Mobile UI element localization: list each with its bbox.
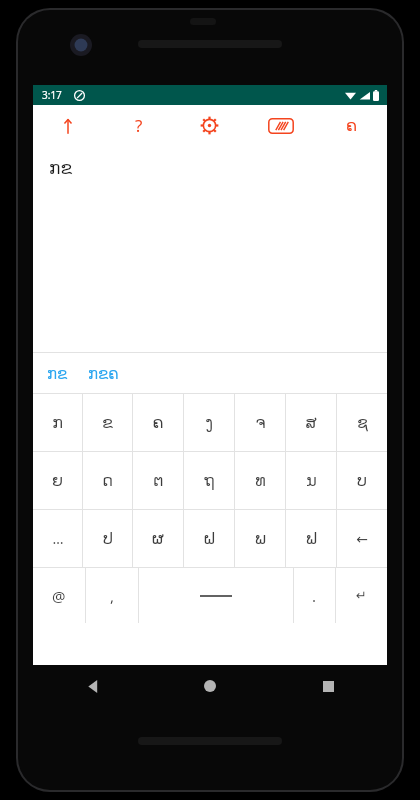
- button[interactable]: …: [33, 510, 82, 567]
- button[interactable]: ຊ: [337, 394, 387, 451]
- staticText: 3:17: [42, 88, 62, 102]
- staticText: ຝ: [203, 529, 216, 548]
- button[interactable]: Keyboard layout: [245, 105, 316, 146]
- staticText: ຊ: [357, 413, 368, 432]
- button[interactable]: ຂ: [83, 394, 132, 451]
- button[interactable]: ຕ: [133, 452, 183, 509]
- button[interactable]: Home: [151, 665, 269, 707]
- staticText: ກຂ: [49, 158, 73, 178]
- staticText: ↵: [356, 588, 367, 603]
- staticText: ກຂ: [47, 365, 68, 382]
- staticText: ປ: [103, 529, 113, 548]
- button[interactable]: ຝ: [184, 510, 234, 567]
- button[interactable]: ດ: [83, 452, 132, 509]
- staticText: ←: [356, 531, 368, 547]
- button[interactable]: Recent apps: [269, 665, 387, 707]
- staticText: .: [312, 586, 317, 606]
- staticText: ຖ: [204, 471, 215, 490]
- button[interactable]: Enter: [336, 568, 387, 623]
- button[interactable]: ຈ: [235, 394, 285, 451]
- button[interactable]: ←: [337, 510, 387, 567]
- button[interactable]: ນ: [286, 452, 336, 509]
- button[interactable]: Back: [33, 665, 151, 707]
- staticText: ,: [110, 586, 115, 606]
- button[interactable]: ຖ: [184, 452, 234, 509]
- button[interactable]: ຟ: [286, 510, 336, 567]
- button[interactable]: ຍ: [33, 452, 82, 509]
- button[interactable]: ພ: [235, 510, 285, 567]
- staticText: ກຂຄ: [88, 365, 119, 382]
- staticText: ກ: [52, 413, 63, 432]
- staticText: ຄ: [346, 116, 358, 135]
- staticText: ດ: [102, 471, 113, 490]
- button[interactable]: ?: [103, 105, 174, 146]
- button[interactable]: ຄ: [133, 394, 183, 451]
- staticText: ຟ: [306, 529, 317, 548]
- button[interactable]: Move up: [33, 105, 103, 146]
- staticText: ?: [135, 114, 143, 137]
- staticText: ຄ: [152, 413, 164, 432]
- button[interactable]: .: [294, 568, 335, 623]
- button[interactable]: @: [33, 568, 85, 623]
- button[interactable]: ກຂ: [47, 365, 68, 382]
- button[interactable]: ກຂຄ: [88, 365, 119, 382]
- staticText: …: [52, 529, 64, 548]
- staticText: ງ: [205, 413, 213, 432]
- staticText: ຈ: [255, 413, 266, 432]
- staticText: ຂ: [102, 413, 113, 432]
- button[interactable]: ບ: [337, 452, 387, 509]
- staticText: ຍ: [52, 471, 63, 490]
- button[interactable]: ຜ: [133, 510, 183, 567]
- button[interactable]: ຄ: [316, 105, 387, 146]
- staticText: ທ: [255, 471, 266, 490]
- button[interactable]: ງ: [184, 394, 234, 451]
- button[interactable]: Space: [139, 568, 293, 623]
- button[interactable]: ປ: [83, 510, 132, 567]
- staticText: @: [52, 586, 66, 606]
- button[interactable]: ກ: [33, 394, 82, 451]
- staticText: ຕ: [153, 471, 164, 490]
- button[interactable]: Settings: [174, 105, 245, 146]
- staticText: ພ: [255, 529, 266, 548]
- staticText: ຜ: [152, 529, 164, 548]
- button[interactable]: ທ: [235, 452, 285, 509]
- button[interactable]: ສ: [286, 394, 336, 451]
- staticText: ສ: [305, 413, 317, 432]
- button[interactable]: ,: [86, 568, 138, 623]
- staticText: ນ: [306, 471, 317, 490]
- staticText: ບ: [357, 471, 367, 490]
